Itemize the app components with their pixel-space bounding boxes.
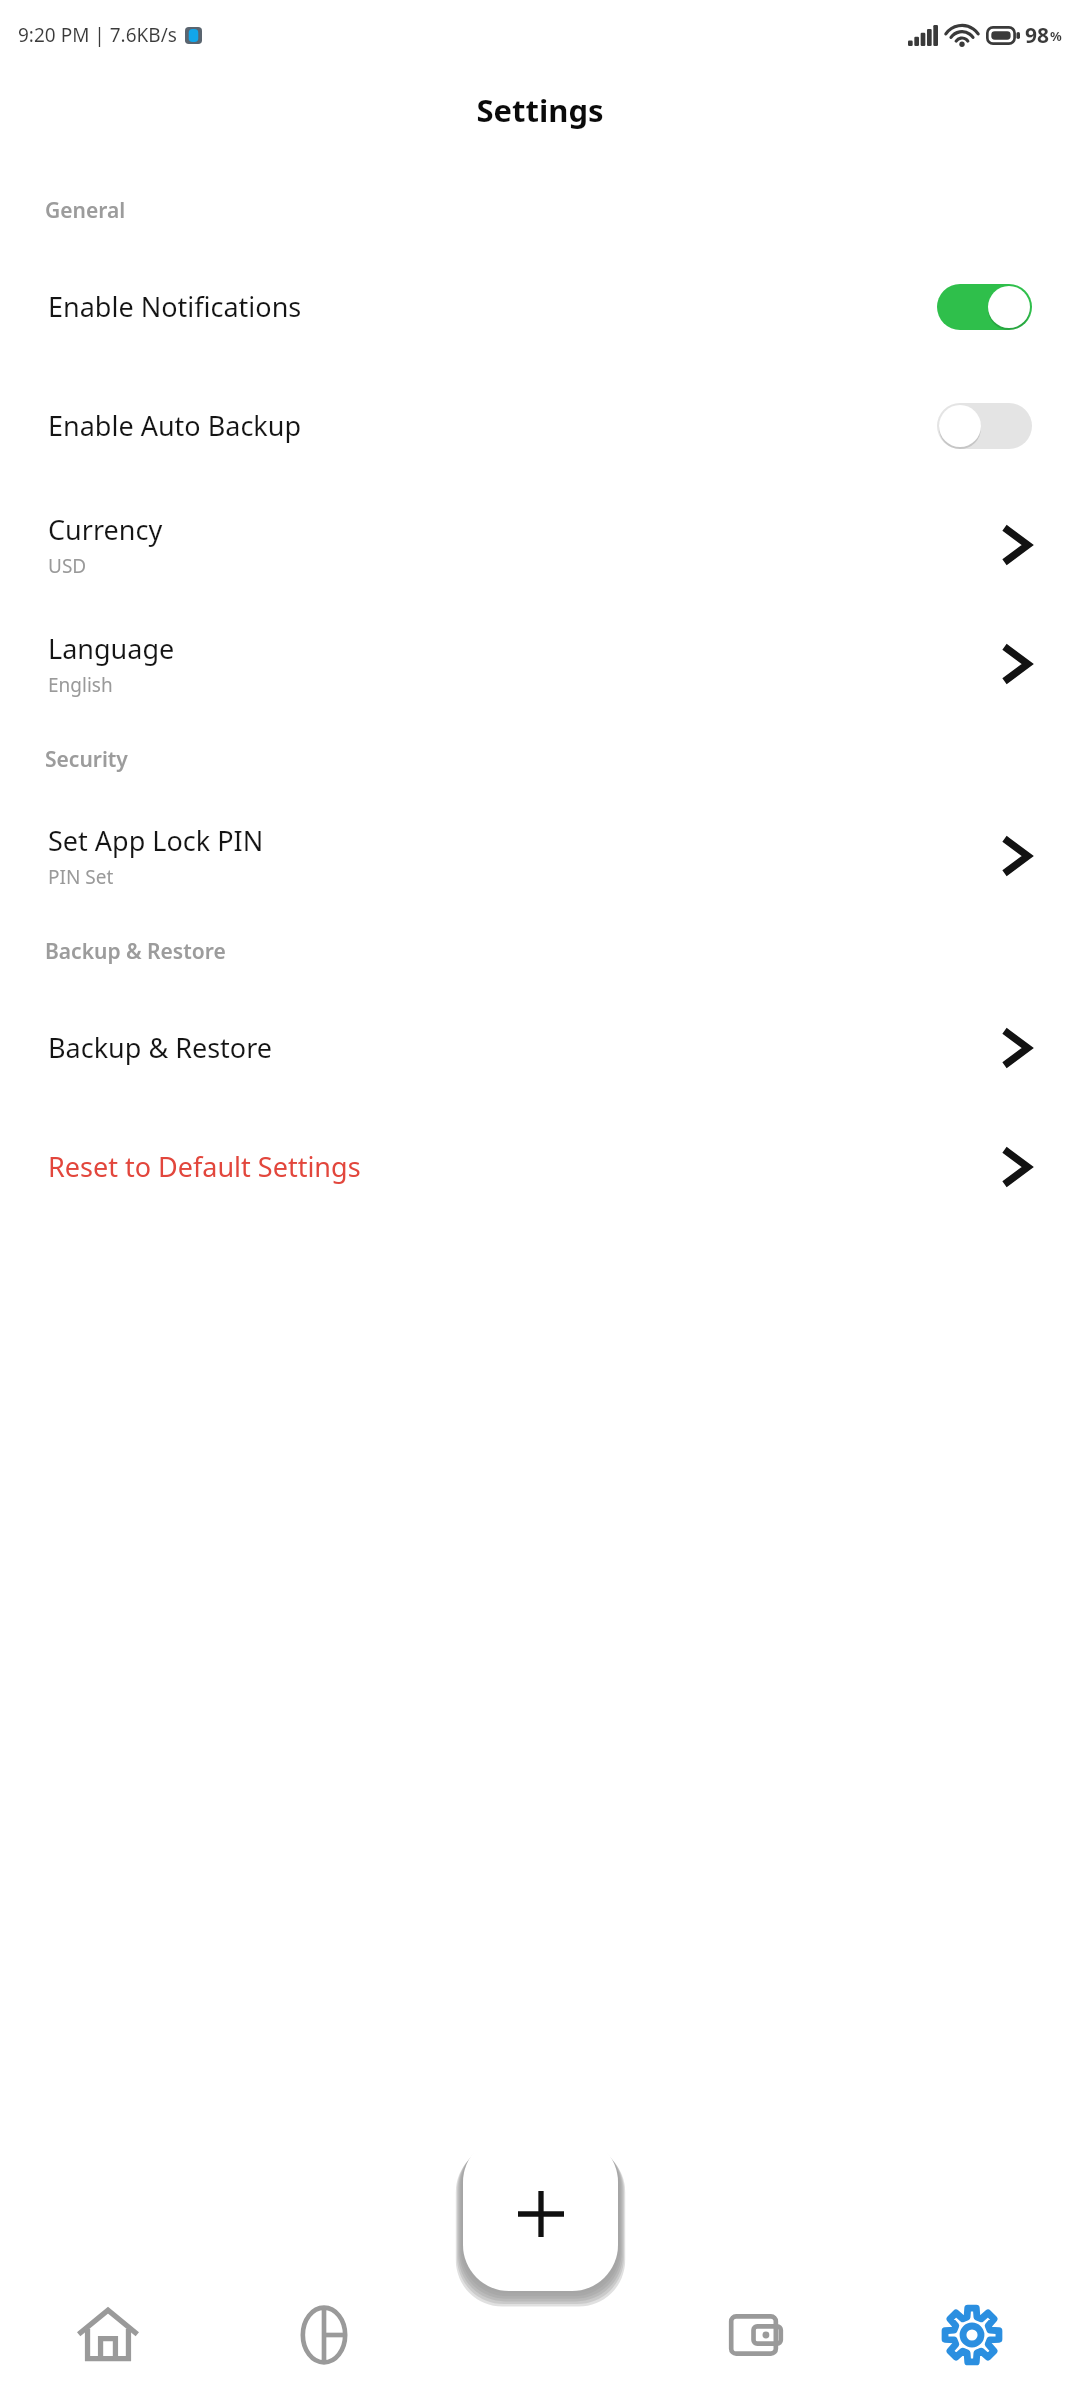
button[interactable]: Set App Lock PIN [0, 796, 1080, 915]
other: Open Reset to Default Settings [1002, 1146, 1032, 1188]
staticText: 98 [1025, 21, 1050, 50]
button[interactable]: Toggle off [937, 403, 1032, 449]
button[interactable]: Currency [0, 485, 1080, 604]
staticText: Enable Auto Backup [48, 407, 937, 444]
staticText: PIN Set [48, 864, 114, 890]
staticText: Enable Notifications [48, 288, 937, 325]
staticText: English [48, 672, 113, 698]
staticText: Backup & Restore [48, 1029, 273, 1066]
staticText: 9:20 PM | 7.6KB/s [18, 22, 177, 48]
other: Open Backup & Restore [1002, 1027, 1032, 1069]
staticText: Security [45, 745, 128, 774]
button[interactable]: Add [463, 2136, 618, 2291]
button[interactable]: Wallet [648, 2270, 864, 2400]
button[interactable]: Enable Notifications [0, 247, 1080, 366]
button[interactable]: Language [0, 604, 1080, 723]
staticText: Language [48, 630, 175, 667]
other: Open Language [1002, 643, 1032, 685]
staticText: % [1050, 27, 1062, 45]
button[interactable]: Statistics [216, 2270, 432, 2400]
button[interactable]: Enable Auto Backup [0, 366, 1080, 485]
button[interactable]: Settings [864, 2270, 1080, 2400]
button[interactable]: Reset to Default Settings [0, 1107, 1080, 1226]
button[interactable]: Home [0, 2270, 216, 2400]
other: Open Currency [1002, 524, 1032, 566]
staticText: Settings [476, 89, 604, 131]
button[interactable]: Backup & Restore [0, 988, 1080, 1107]
staticText: Reset to Default Settings [48, 1148, 361, 1185]
button[interactable]: Toggle on [937, 284, 1032, 330]
staticText: USD [48, 553, 87, 579]
staticText: Backup & Restore [45, 937, 226, 966]
staticText: General [45, 196, 126, 225]
staticText: Currency [48, 511, 163, 548]
other: Open Set App Lock PIN [1002, 835, 1032, 877]
staticText: Set App Lock PIN [48, 822, 264, 859]
